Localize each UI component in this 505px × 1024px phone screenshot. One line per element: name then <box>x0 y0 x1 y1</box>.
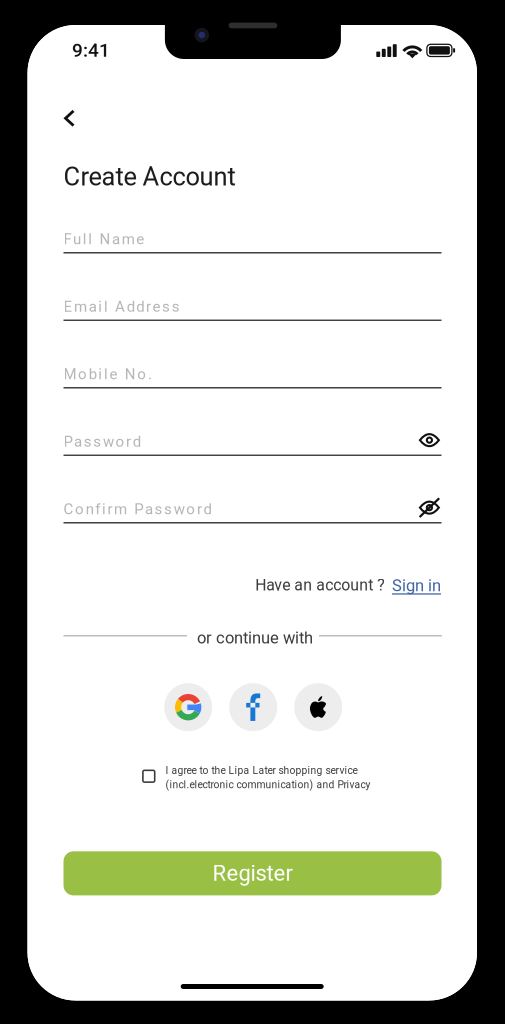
staticText: Create Account <box>63 162 235 192</box>
staticText: Register <box>212 860 292 886</box>
staticText: 9:41 <box>72 39 110 61</box>
staticText: Confirm Password <box>63 500 211 518</box>
staticText: Sign in <box>392 576 441 595</box>
staticText: I agree to the Lipa Later shopping servi… <box>165 764 357 777</box>
button[interactable]: Confirm Password <box>63 503 441 523</box>
staticText: Email Address <box>63 298 180 315</box>
button[interactable]: Email Address <box>63 301 441 321</box>
button[interactable]: I agree to the Lipa Later shopping servi… <box>143 765 365 797</box>
button[interactable]: Register <box>63 851 441 895</box>
button[interactable]: Password <box>63 436 441 456</box>
button[interactable]: Sign in <box>392 576 441 595</box>
staticText: Mobile No. <box>63 365 152 383</box>
staticText: Have an account ? <box>255 576 384 594</box>
staticText: or continue with <box>197 628 313 648</box>
button[interactable]: Full Name <box>63 233 441 253</box>
button[interactable]: Mobile No. <box>63 368 441 388</box>
button[interactable]: Continue with Facebook <box>229 683 277 731</box>
button[interactable]: Back <box>43 97 95 139</box>
staticText: Password <box>63 433 141 450</box>
staticText: Full Name <box>63 230 144 248</box>
button[interactable]: Continue with Apple <box>294 683 342 731</box>
staticText: (incl.electronic communication) and Priv… <box>165 779 370 791</box>
button[interactable]: Continue with Google <box>164 683 212 731</box>
